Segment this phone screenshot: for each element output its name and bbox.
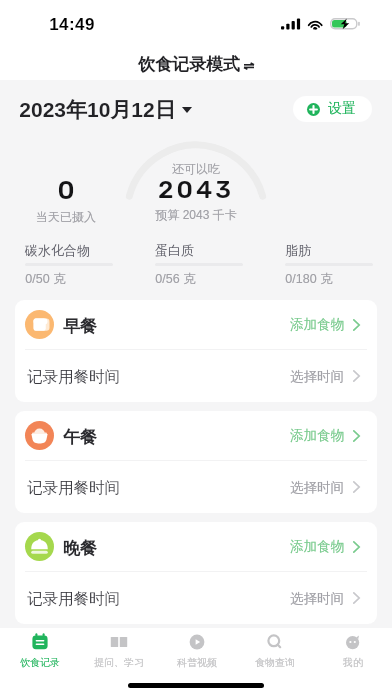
staticText: 0/56 克: [155, 271, 196, 287]
button[interactable]: 记录用餐时间: [15, 461, 377, 513]
staticText: 添加食物: [290, 316, 344, 333]
staticText: 添加食物: [290, 427, 344, 444]
button[interactable]: 提问、学习: [79, 628, 158, 675]
button[interactable]: 记录用餐时间: [15, 350, 377, 402]
button[interactable]: 设置: [293, 96, 372, 122]
staticText: 14:49: [49, 15, 95, 34]
staticText: 我的: [343, 656, 363, 669]
button[interactable]: 早餐: [15, 300, 377, 349]
staticText: 还可以吃: [172, 161, 220, 176]
staticText: 选择时间: [290, 368, 344, 385]
staticText: 早餐: [63, 316, 97, 337]
staticText: 碳水化合物: [25, 242, 90, 258]
staticText: 2023年10月12日: [19, 97, 176, 123]
button[interactable]: 记录用餐时间: [15, 572, 377, 624]
button[interactable]: 午餐: [15, 411, 377, 460]
staticText: 午餐: [63, 427, 97, 448]
button[interactable]: 食物查询: [236, 628, 314, 675]
button[interactable]: 饮食记录: [0, 628, 79, 675]
staticText: 设置: [328, 100, 356, 118]
staticText: 记录用餐时间: [27, 367, 120, 387]
staticText: 晚餐: [63, 538, 97, 559]
staticText: 食物查询: [255, 656, 295, 669]
staticText: 记录用餐时间: [27, 478, 120, 498]
staticText: 0/50 克: [25, 271, 66, 287]
staticText: 脂肪: [285, 242, 311, 258]
staticText: 选择时间: [290, 590, 344, 607]
staticText: 饮食记录模式: [138, 54, 240, 75]
staticText: 预算 2043 千卡: [155, 207, 237, 222]
staticText: 记录用餐时间: [27, 589, 120, 609]
staticText: 0/180 克: [285, 271, 333, 287]
button[interactable]: 科普视频: [158, 628, 236, 675]
staticText: 蛋白质: [155, 242, 194, 258]
staticText: 添加食物: [290, 538, 344, 555]
staticText: 2043: [158, 175, 234, 205]
staticText: 科普视频: [177, 656, 217, 669]
staticText: 饮食记录: [20, 656, 60, 669]
button[interactable]: 晚餐: [15, 522, 377, 571]
staticText: 提问、学习: [94, 656, 144, 669]
button[interactable]: 2023年10月12日: [18, 95, 193, 125]
staticText: 0: [57, 175, 75, 206]
staticText: 选择时间: [290, 479, 344, 496]
button[interactable]: 我的: [314, 628, 392, 675]
staticText: 当天已摄入: [36, 209, 96, 224]
